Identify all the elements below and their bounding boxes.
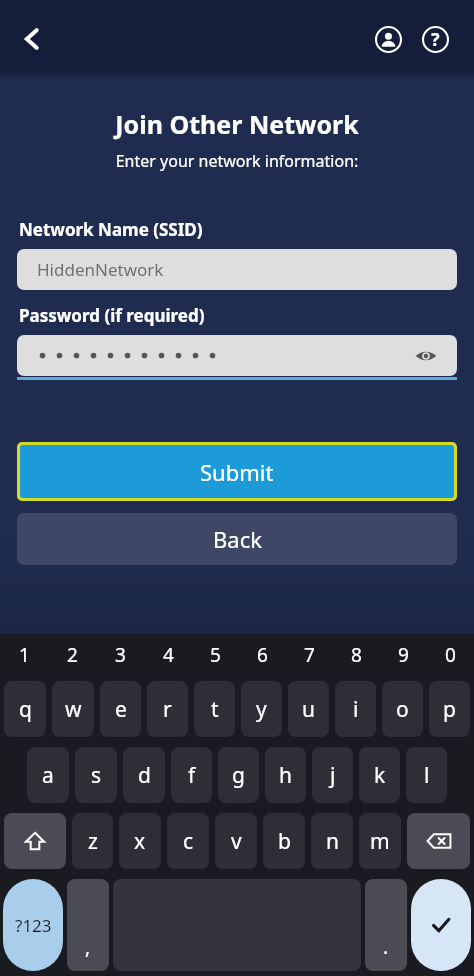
button[interactable]: h [265, 747, 306, 803]
button[interactable]: p [429, 681, 470, 737]
button[interactable]: g [218, 747, 259, 803]
staticText: d [138, 761, 151, 790]
button[interactable]: r [147, 681, 188, 737]
staticText: s [91, 761, 102, 790]
staticText: Join Other Network [0, 107, 474, 141]
button[interactable]: k [359, 747, 400, 803]
staticText: . [383, 934, 389, 960]
button[interactable]: q [4, 681, 46, 737]
staticText: Submit [200, 457, 274, 487]
button[interactable]: n [311, 813, 353, 869]
staticText: c [183, 827, 194, 856]
staticText: 3 [115, 642, 126, 668]
button[interactable]: j [312, 747, 353, 803]
button[interactable]: 3 [96, 634, 144, 676]
staticText: 8 [351, 642, 362, 668]
button[interactable]: w [52, 681, 94, 737]
staticText: ? [431, 27, 440, 52]
staticText: 9 [398, 642, 409, 668]
staticText: z [88, 827, 98, 856]
staticText: n [326, 827, 339, 856]
staticText: l [424, 761, 430, 790]
staticText: 5 [210, 642, 221, 668]
staticText: Password (if required) [19, 304, 205, 327]
staticText: g [232, 761, 245, 790]
staticText: v [231, 827, 242, 856]
staticText: 1 [19, 642, 30, 668]
button[interactable]: 9 [380, 634, 427, 676]
button[interactable]: c [167, 813, 209, 869]
staticText: x [134, 827, 146, 856]
staticText: 0 [445, 642, 456, 668]
button[interactable]: o [382, 681, 423, 737]
staticText: 7 [304, 642, 315, 668]
button[interactable]: 6 [239, 634, 286, 676]
button[interactable]: z [72, 813, 113, 869]
staticText: b [278, 827, 291, 856]
staticText: o [396, 695, 409, 724]
button[interactable]: v [215, 813, 257, 869]
staticText: ?123 [15, 914, 52, 937]
staticText: q [19, 695, 32, 724]
button[interactable]: , [67, 879, 109, 971]
staticText: 6 [257, 642, 268, 668]
button[interactable]: 0 [427, 634, 474, 676]
staticText: j [330, 761, 336, 790]
staticText: , [85, 934, 91, 960]
staticText: h [279, 761, 292, 790]
button[interactable]: Show password [411, 341, 441, 371]
button[interactable]: Backspace [407, 813, 470, 869]
button[interactable]: u [288, 681, 329, 737]
staticText: 2 [67, 642, 78, 668]
button[interactable]: ?123 [3, 879, 63, 971]
button[interactable]: 7 [286, 634, 333, 676]
staticText: m [370, 827, 390, 856]
button[interactable]: Back [6, 13, 58, 65]
button[interactable]: 1 [0, 634, 48, 676]
button[interactable]: s [75, 747, 117, 803]
button[interactable]: 8 [333, 634, 380, 676]
staticText: y [256, 695, 267, 724]
button[interactable]: a [27, 747, 69, 803]
button[interactable]: d [123, 747, 165, 803]
staticText: a [42, 761, 54, 790]
button[interactable]: x [119, 813, 161, 869]
staticText: 4 [163, 642, 174, 668]
button[interactable]: Enter [411, 879, 471, 971]
button[interactable]: 5 [192, 634, 239, 676]
staticText: p [443, 695, 456, 724]
button[interactable]: 4 [144, 634, 192, 676]
button[interactable]: e [100, 681, 141, 737]
button[interactable]: i [335, 681, 376, 737]
staticText: i [353, 695, 359, 724]
button[interactable]: HiddenNetwork [17, 249, 457, 290]
staticText: Enter your network information: [0, 150, 474, 172]
staticText: w [65, 695, 82, 724]
button[interactable]: . [365, 879, 407, 971]
button[interactable]: y [241, 681, 282, 737]
staticText: u [302, 695, 315, 724]
staticText: k [374, 761, 386, 790]
button[interactable]: f [171, 747, 212, 803]
button[interactable]: Account [367, 18, 409, 60]
button[interactable]: b [263, 813, 305, 869]
staticText: f [188, 761, 196, 790]
button[interactable]: Submit [17, 442, 457, 501]
button[interactable]: Help [414, 18, 456, 60]
button[interactable]: t [194, 681, 235, 737]
staticText: r [163, 695, 172, 724]
button[interactable]: l [406, 747, 447, 803]
button[interactable]: m [359, 813, 401, 869]
staticText: t [211, 695, 219, 724]
staticText: Network Name (SSID) [19, 218, 203, 241]
staticText: HiddenNetwork [37, 258, 164, 281]
button[interactable]: Shift [4, 813, 66, 869]
staticText: Back [213, 524, 262, 554]
button[interactable]: Back [17, 513, 457, 565]
staticText: e [115, 695, 127, 724]
button[interactable]: Show password [17, 335, 457, 380]
button[interactable]: 2 [48, 634, 96, 676]
